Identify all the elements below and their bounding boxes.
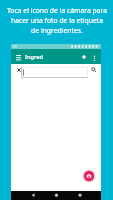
button[interactable] [21, 67, 88, 78]
button[interactable]: Buscar [91, 67, 97, 73]
button[interactable]: Buscar [80, 53, 88, 61]
button[interactable]: Hacer foto [82, 169, 96, 183]
staticText: Toca el icono de la cámara para hacer un… [7, 6, 107, 35]
button[interactable]: Menú [14, 53, 22, 61]
staticText: Ingred [25, 53, 43, 61]
button[interactable]: Borrar [17, 68, 21, 72]
button[interactable]: Más opciones [90, 53, 98, 61]
